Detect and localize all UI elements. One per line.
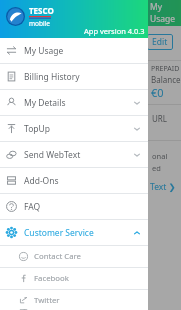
staticText: App version 4.0.3	[84, 26, 145, 36]
button[interactable]: My Usage	[0, 38, 148, 63]
staticText: ed	[152, 163, 161, 173]
staticText: FAQ	[24, 201, 141, 213]
other: Billing History	[6, 71, 17, 82]
staticText: PREPAID	[151, 64, 180, 74]
staticText: Balance	[151, 74, 181, 85]
button[interactable]: Contact Care	[0, 246, 148, 267]
other: Add-Ons	[6, 175, 17, 186]
other: Twitter	[19, 296, 28, 305]
staticText: Edit	[152, 36, 168, 48]
button[interactable]: Billing History	[0, 64, 148, 89]
staticText: URL	[152, 113, 168, 124]
staticText: My Usage	[150, 1, 181, 25]
button[interactable]: TopUp	[0, 116, 148, 141]
other: Contact Care	[19, 252, 28, 261]
staticText: My Details	[24, 97, 133, 109]
button[interactable]: FAQ	[0, 194, 148, 219]
staticText: TESCO	[29, 5, 54, 16]
button[interactable]: Edit	[147, 34, 173, 50]
staticText: Twitter	[34, 295, 60, 306]
other: My Details	[6, 97, 17, 108]
other: My Usage	[6, 45, 17, 56]
staticText: €0	[151, 85, 164, 100]
button[interactable]: Send WebText	[0, 142, 148, 167]
other: Customer Service	[6, 227, 17, 238]
staticText: TopUp	[24, 123, 133, 135]
button[interactable]: My Details	[0, 90, 148, 115]
staticText: Billing History	[24, 71, 141, 83]
other: TopUp	[6, 123, 17, 134]
button[interactable]: Facebook	[0, 268, 148, 289]
staticText: Contact Care	[34, 251, 81, 262]
staticText: onal	[152, 151, 168, 161]
staticText: mobile	[29, 19, 51, 28]
button[interactable]: Twitter	[0, 290, 148, 310]
staticText: Text ❯	[150, 181, 176, 193]
other: Facebook	[19, 274, 28, 283]
staticText: Add-Ons	[24, 175, 141, 187]
staticText: Facebook	[34, 273, 69, 284]
button[interactable]: Add-Ons	[0, 168, 148, 193]
other: FAQ	[6, 201, 17, 212]
staticText: Customer Service	[24, 227, 133, 239]
button[interactable]: Customer Service	[0, 220, 148, 245]
staticText: Send WebText	[24, 149, 133, 161]
staticText: My Usage	[24, 45, 141, 57]
other: Send WebText	[6, 149, 17, 160]
